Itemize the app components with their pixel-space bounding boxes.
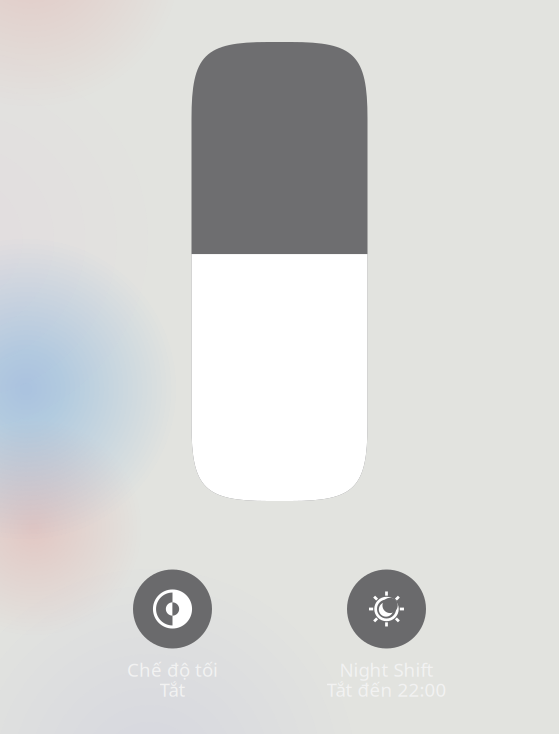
staticText: Tắt	[159, 677, 185, 702]
button[interactable]: Độ sáng	[191, 42, 367, 501]
staticText: Chế độ tối	[127, 657, 218, 682]
staticText: Night Shift	[339, 657, 433, 682]
button[interactable]: Night Shift, Tắt đến 22:00	[279, 569, 493, 697]
button[interactable]: Chế độ tối, Tắt	[65, 569, 279, 697]
staticText: Tắt đến 22:00	[326, 677, 446, 702]
